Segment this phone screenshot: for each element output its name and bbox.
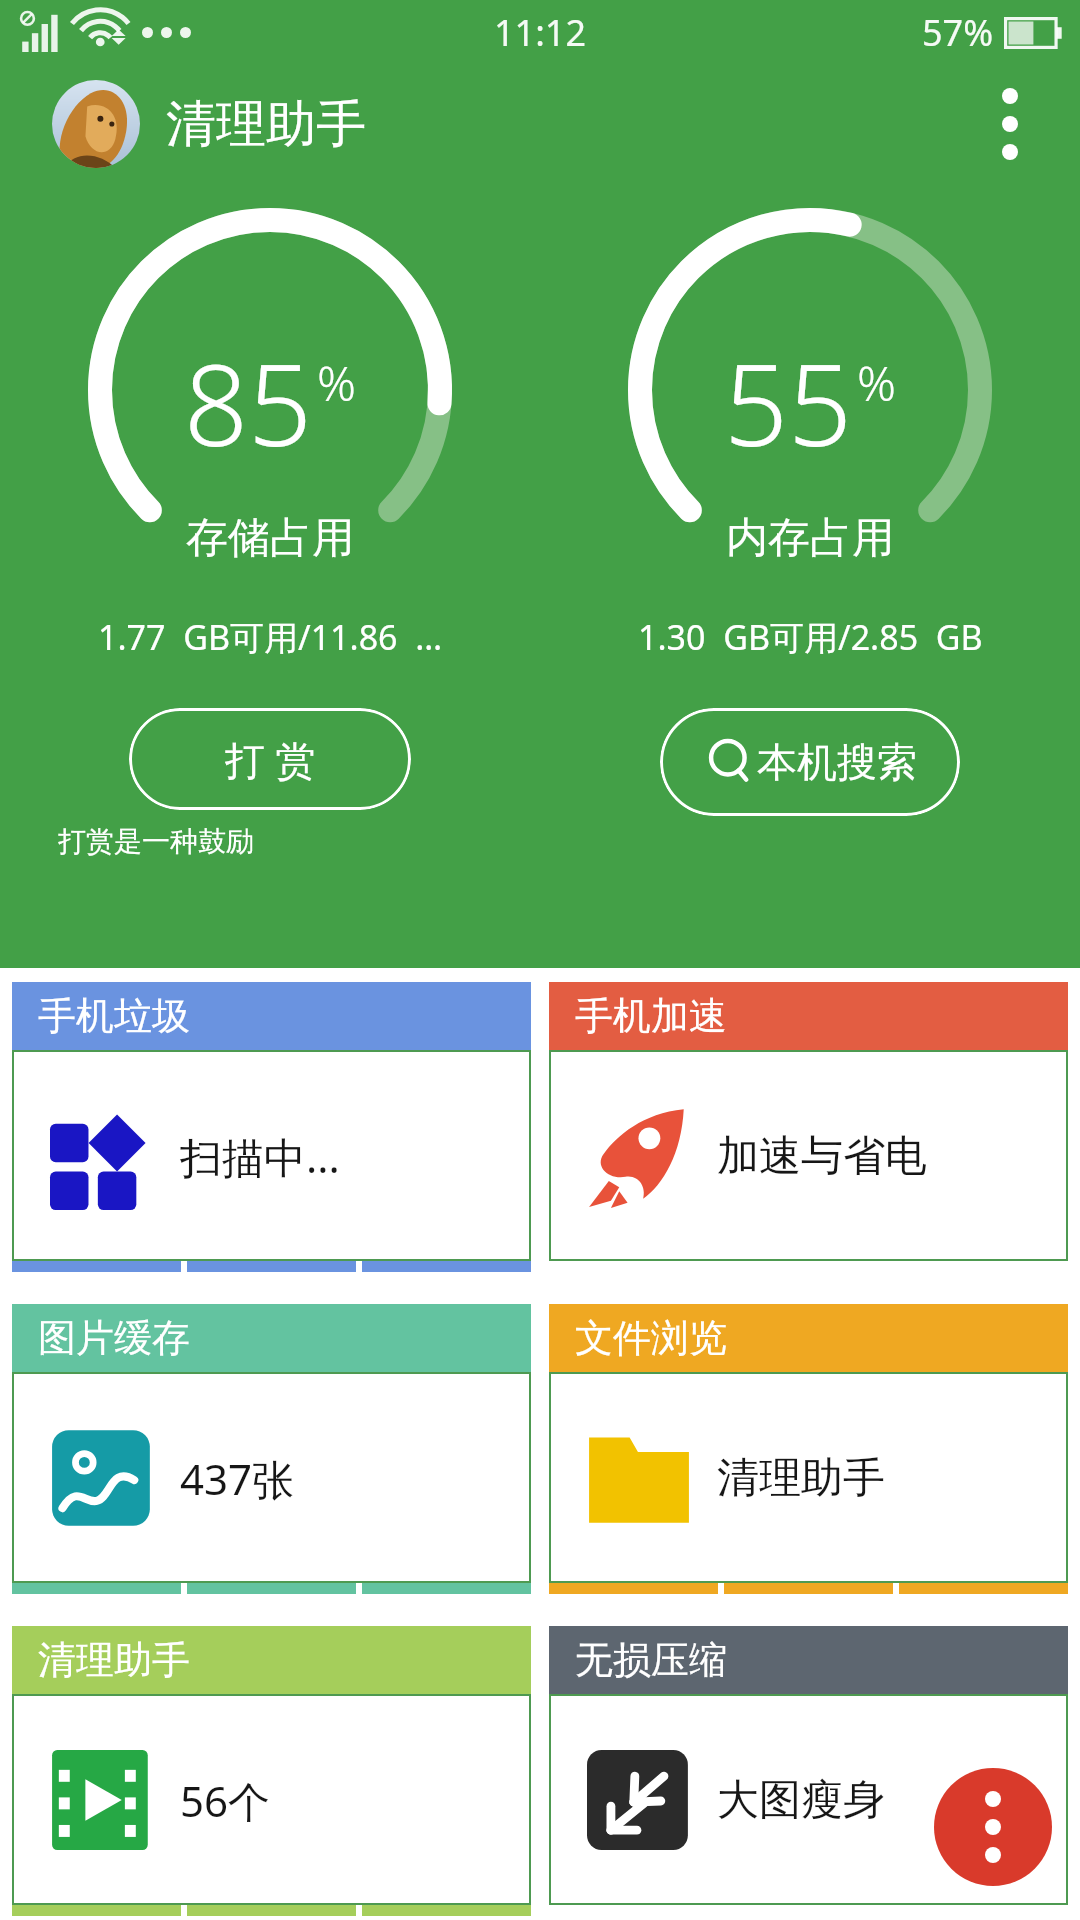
button[interactable]: 图片缓存 bbox=[12, 1304, 531, 1594]
staticText: 11:12 bbox=[494, 8, 587, 57]
staticText: 清理助手 bbox=[166, 93, 366, 156]
staticText: 图片缓存 bbox=[38, 1314, 190, 1362]
staticText: 56个 bbox=[180, 1772, 271, 1829]
button[interactable]: Profile avatar bbox=[52, 80, 140, 168]
staticText: 手机加速 bbox=[575, 992, 727, 1040]
staticText: 扫描中... bbox=[180, 1128, 340, 1185]
staticText: 1.77 GB可用/11.86 … bbox=[98, 614, 443, 660]
staticText: 大图瘦身 bbox=[717, 1774, 885, 1827]
staticText: 手机垃圾 bbox=[38, 992, 190, 1040]
staticText: 85 bbox=[184, 326, 312, 479]
button[interactable]: 打 赏 bbox=[129, 708, 411, 810]
button[interactable]: Overflow menu bbox=[974, 88, 1046, 160]
staticText: 1.30 GB可用/2.85 GB bbox=[638, 614, 983, 660]
button[interactable]: 文件浏览 bbox=[549, 1304, 1068, 1594]
staticText: 打 赏 bbox=[225, 732, 316, 787]
staticText: 55 bbox=[724, 326, 852, 479]
staticText: % bbox=[857, 350, 896, 415]
staticText: 文件浏览 bbox=[575, 1314, 727, 1362]
button[interactable]: 手机加速 bbox=[549, 982, 1068, 1272]
staticText: 本机搜索 bbox=[757, 737, 917, 787]
button[interactable]: 清理助手 bbox=[12, 1626, 531, 1916]
staticText: % bbox=[317, 350, 356, 415]
staticText: 无损压缩 bbox=[575, 1636, 727, 1684]
button[interactable]: 手机垃圾 bbox=[12, 982, 531, 1272]
button[interactable]: More actions bbox=[934, 1768, 1052, 1886]
button[interactable]: 本机搜索 bbox=[660, 708, 960, 816]
staticText: 加速与省电 bbox=[717, 1130, 927, 1183]
staticText: 打赏是一种鼓励 bbox=[58, 824, 254, 859]
staticText: 437张 bbox=[180, 1450, 295, 1507]
staticText: 清理助手 bbox=[717, 1452, 885, 1505]
staticText: 57% bbox=[922, 8, 994, 57]
staticText: 清理助手 bbox=[38, 1636, 190, 1684]
staticText: 内存占用 bbox=[726, 512, 894, 565]
button[interactable]: 无损压缩 bbox=[549, 1626, 1068, 1916]
staticText: 存储占用 bbox=[186, 512, 354, 565]
